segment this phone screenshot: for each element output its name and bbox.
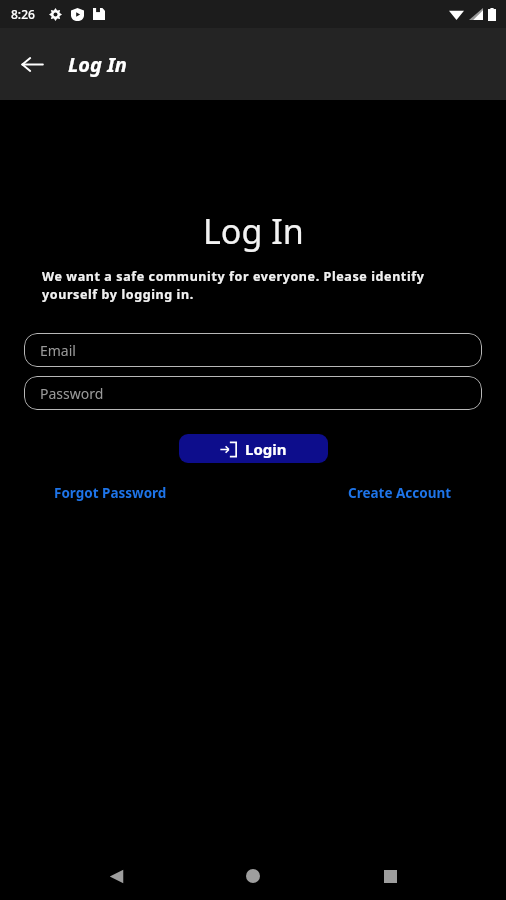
button[interactable]: Back	[95, 855, 137, 897]
staticText: Log In	[203, 208, 304, 254]
button[interactable]: Back	[10, 42, 54, 86]
button[interactable]: Password	[24, 376, 482, 410]
button[interactable]: Home	[232, 855, 274, 897]
staticText: Password	[40, 384, 104, 403]
staticText: Log In	[68, 51, 127, 78]
staticText: Email	[40, 341, 76, 360]
staticText: Create Account	[348, 484, 452, 502]
staticText: Login	[245, 439, 287, 459]
staticText: 8:26	[11, 6, 35, 22]
button[interactable]: Recent apps	[369, 855, 411, 897]
button[interactable]: Login	[179, 434, 328, 463]
button[interactable]: Create Account	[342, 480, 458, 506]
button[interactable]: Forgot Password	[48, 480, 173, 506]
button[interactable]: Email	[24, 333, 482, 367]
staticText: Forgot Password	[54, 484, 167, 502]
staticText: We want a safe community for everyone. P…	[42, 268, 464, 303]
